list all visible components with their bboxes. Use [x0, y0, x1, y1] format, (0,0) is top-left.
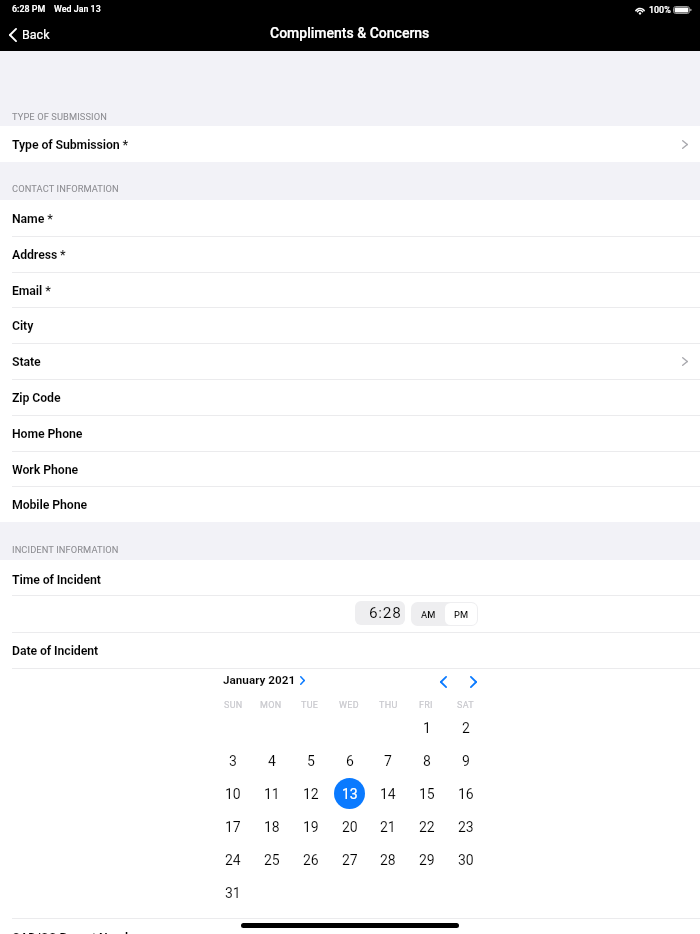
button[interactable]: 20	[334, 811, 365, 842]
staticText: 6:28	[369, 604, 402, 622]
button[interactable]: Previous month	[432, 671, 454, 693]
button[interactable]: Name *	[0, 200, 700, 236]
button[interactable]: 15	[411, 778, 442, 809]
staticText: 6	[346, 753, 354, 769]
button[interactable]: State	[0, 343, 700, 379]
staticText: Date of Incident	[12, 644, 99, 658]
button[interactable]: 13	[334, 778, 365, 809]
staticText: SUN	[224, 700, 243, 711]
staticText: 6:28 PM	[12, 4, 46, 14]
staticText: INCIDENT INFORMATION	[12, 544, 119, 555]
button[interactable]: 17	[217, 811, 248, 842]
button[interactable]: 9	[450, 745, 481, 776]
button[interactable]: 2	[450, 712, 481, 743]
staticText: 9	[462, 753, 470, 769]
staticText: 2	[462, 720, 470, 736]
button[interactable]: 6	[334, 745, 365, 776]
button[interactable]: 12	[295, 778, 326, 809]
staticText: Work Phone	[12, 463, 78, 477]
staticText: State	[12, 355, 41, 369]
button[interactable]: 25	[256, 844, 287, 875]
staticText: 14	[380, 786, 396, 802]
button[interactable]: 19	[295, 811, 326, 842]
button[interactable]: 4	[256, 745, 287, 776]
button[interactable]: Back	[9, 27, 50, 42]
button[interactable]: Address *	[0, 236, 700, 272]
button[interactable]: 14	[372, 778, 403, 809]
button[interactable]: 26	[295, 844, 326, 875]
button[interactable]: Mobile Phone	[0, 486, 700, 522]
staticText: FRI	[419, 700, 433, 711]
button[interactable]: 21	[372, 811, 403, 842]
staticText: Name *	[12, 212, 53, 226]
staticText: City	[12, 319, 34, 333]
staticText: 10	[225, 786, 241, 802]
staticText: 100%	[649, 5, 671, 15]
staticText: 19	[303, 819, 319, 835]
button[interactable]: 22	[411, 811, 442, 842]
button[interactable]: 8	[411, 745, 442, 776]
button[interactable]: CAD/CC Report Number	[0, 918, 700, 934]
button[interactable]: 23	[450, 811, 481, 842]
staticText: 28	[380, 852, 396, 868]
staticText: TUE	[301, 700, 319, 711]
staticText: CONTACT INFORMATION	[12, 183, 119, 194]
staticText: 11	[264, 786, 280, 802]
button[interactable]: Date of Incident	[0, 632, 700, 668]
button[interactable]: 3	[217, 745, 248, 776]
staticText: 24	[225, 852, 241, 868]
staticText: PM	[454, 609, 469, 620]
staticText: 3	[229, 753, 237, 769]
button[interactable]: 11	[256, 778, 287, 809]
button[interactable]: January 2021	[223, 673, 305, 687]
staticText: Time of Incident	[12, 573, 101, 587]
button[interactable]: Work Phone	[0, 451, 700, 487]
button[interactable]: Zip Code	[0, 379, 700, 415]
button[interactable]: 5	[295, 745, 326, 776]
button[interactable]: 31	[217, 877, 248, 908]
staticText: Wed Jan 13	[54, 4, 101, 14]
button[interactable]: Email *	[0, 272, 700, 308]
staticText: 7	[384, 753, 392, 769]
staticText: MON	[260, 700, 282, 711]
staticText: Zip Code	[12, 391, 61, 405]
button[interactable]: Type of Submission *	[0, 126, 700, 162]
staticText: 4	[268, 753, 276, 769]
button[interactable]: 27	[334, 844, 365, 875]
button[interactable]: Next month	[462, 671, 484, 693]
button[interactable]: 29	[411, 844, 442, 875]
staticText: AM	[421, 609, 436, 620]
button[interactable]: 6:28	[355, 601, 405, 625]
button[interactable]: 1	[411, 712, 442, 743]
staticText: 25	[264, 852, 280, 868]
staticText: 15	[419, 786, 435, 802]
button[interactable]: 24	[217, 844, 248, 875]
staticText: 5	[307, 753, 315, 769]
button[interactable]: Home Phone	[0, 415, 700, 451]
button[interactable]: AM	[411, 602, 445, 626]
staticText: 20	[342, 819, 358, 835]
staticText: 17	[225, 819, 241, 835]
staticText: 30	[458, 852, 474, 868]
button[interactable]: 18	[256, 811, 287, 842]
staticText: 16	[458, 786, 474, 802]
staticText: Back	[22, 27, 50, 42]
staticText: 26	[303, 852, 319, 868]
staticText: 12	[303, 786, 319, 802]
button[interactable]: 16	[450, 778, 481, 809]
button[interactable]: 10	[217, 778, 248, 809]
button[interactable]: Time of Incident	[0, 561, 700, 596]
staticText: 23	[458, 819, 474, 835]
staticText: 31	[225, 885, 241, 901]
staticText: THU	[379, 700, 398, 711]
staticText: 8	[423, 753, 431, 769]
button[interactable]: 28	[372, 844, 403, 875]
staticText: 21	[380, 819, 396, 835]
staticText: 13	[342, 786, 358, 802]
button[interactable]: 7	[372, 745, 403, 776]
staticText: Address *	[12, 248, 66, 262]
staticText: Email *	[12, 284, 51, 298]
button[interactable]: City	[0, 307, 700, 343]
button[interactable]: PM	[445, 603, 477, 625]
button[interactable]: 30	[450, 844, 481, 875]
